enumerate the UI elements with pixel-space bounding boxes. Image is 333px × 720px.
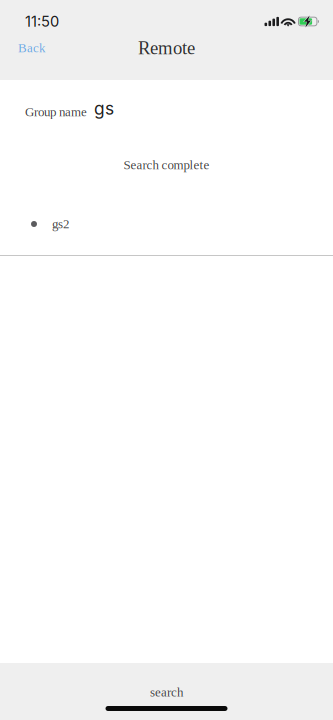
- staticText: Search complete: [123, 158, 209, 172]
- button[interactable]: search: [0, 663, 333, 720]
- button[interactable]: Back: [0, 32, 59, 64]
- staticText: 11:50: [25, 13, 59, 30]
- staticText: Remote: [138, 38, 195, 58]
- staticText: gs: [94, 98, 114, 119]
- staticText: Group name: [25, 105, 87, 119]
- staticText: gs2: [52, 217, 69, 231]
- staticText: Back: [18, 41, 45, 55]
- staticText: search: [150, 685, 183, 699]
